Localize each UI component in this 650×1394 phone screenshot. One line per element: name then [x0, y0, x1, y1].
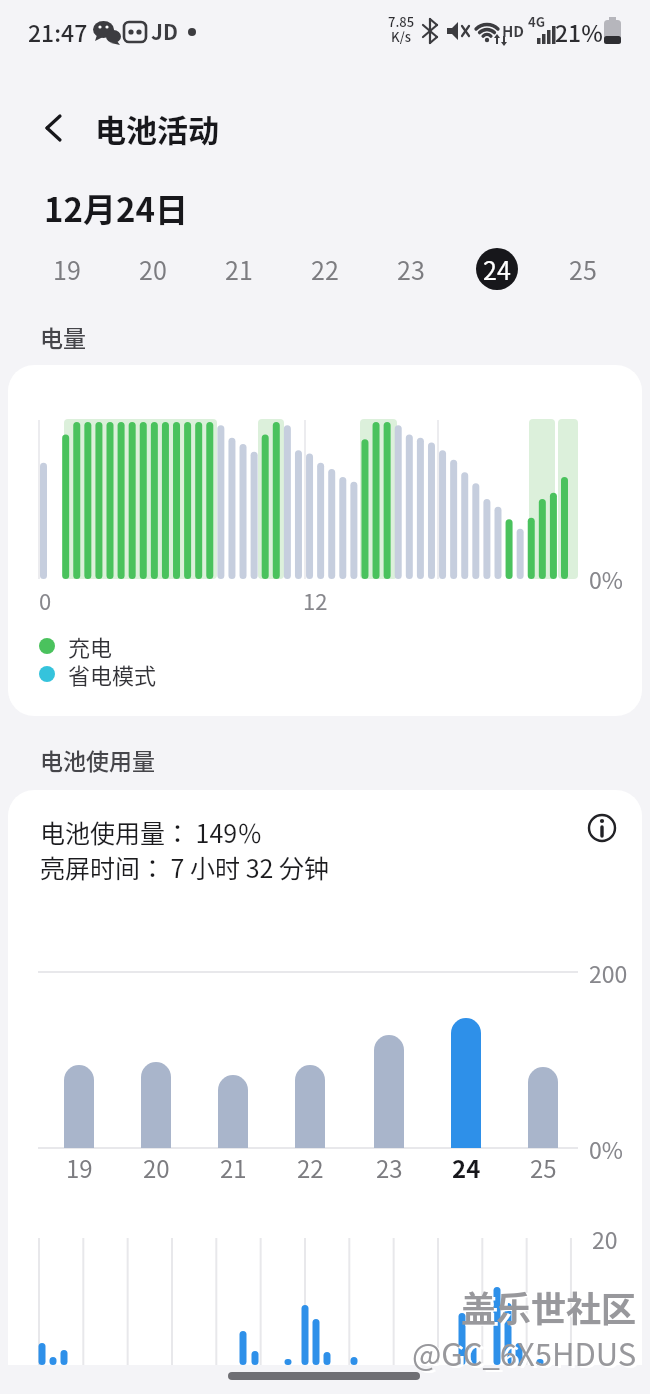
staticText: 省电模式	[68, 658, 157, 690]
staticText: 20	[139, 251, 167, 287]
staticText: 充电	[68, 630, 113, 662]
staticText: 21:47	[28, 15, 88, 48]
staticText: 21%	[555, 15, 603, 48]
staticText: HD	[502, 20, 525, 42]
staticText: 4G	[528, 12, 545, 31]
staticText: 12月24日	[44, 184, 188, 232]
staticText: JD	[151, 16, 178, 46]
staticText: 电池活动	[95, 106, 219, 151]
staticText: 20	[592, 1222, 618, 1255]
staticText: @GC_6X5HDUS	[412, 1330, 637, 1375]
staticText: 电池使用量	[40, 743, 155, 776]
staticText: K/s	[391, 27, 411, 46]
staticText: 21	[225, 251, 253, 287]
staticText: 25	[569, 251, 597, 287]
staticText: 0%	[589, 1132, 623, 1165]
staticText: 0	[39, 584, 52, 616]
staticText: 盖乐世社区	[461, 1281, 637, 1332]
staticText: 24	[483, 251, 511, 287]
staticText: 盖乐世社区	[464, 1282, 640, 1333]
staticText: 23	[397, 251, 425, 287]
staticText: 23	[376, 1150, 403, 1185]
staticText: 7.85	[388, 12, 415, 31]
staticText: 0%	[589, 562, 623, 595]
staticText: 19	[66, 1150, 93, 1185]
staticText: @GC_6X5HDUS	[415, 1332, 640, 1377]
staticText: 21	[220, 1150, 247, 1185]
staticText: 20	[143, 1150, 170, 1185]
staticText: 22	[297, 1150, 324, 1185]
staticText: 电量	[40, 320, 86, 353]
staticText: 22	[311, 251, 339, 287]
staticText: 24	[452, 1150, 481, 1185]
staticText: 12	[303, 584, 328, 616]
staticText: 电池使用量： 149％	[40, 814, 263, 850]
staticText: 200	[589, 956, 628, 989]
staticText: 25	[530, 1150, 557, 1185]
staticText: 亮屏时间： 7 小时 32 分钟	[40, 849, 330, 885]
staticText: 19	[53, 251, 81, 287]
